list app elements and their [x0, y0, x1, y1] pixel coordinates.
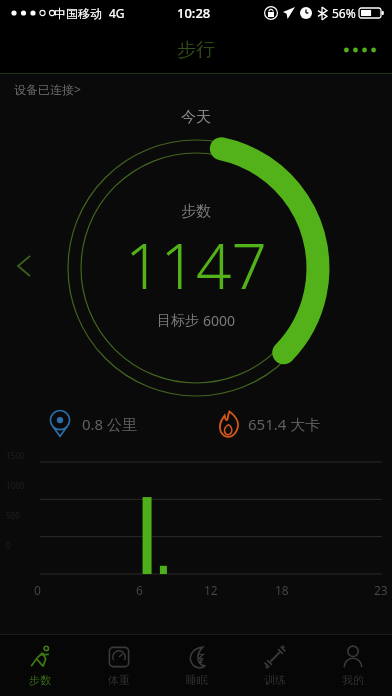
button[interactable]: 睡眠	[158, 634, 236, 696]
staticText: 0	[6, 540, 11, 551]
staticText: 0	[34, 582, 41, 598]
button[interactable]: 651.4 大卡	[196, 402, 392, 446]
staticText: 步数	[181, 202, 211, 221]
staticText: 4G	[109, 5, 125, 21]
button[interactable]: 步数	[0, 634, 79, 696]
staticText: 651.4 大卡	[248, 414, 321, 434]
staticText: 500	[6, 510, 20, 521]
staticText: 1500	[6, 450, 25, 461]
button[interactable]: Previous day	[0, 244, 44, 288]
staticText: 设备已连接>	[14, 81, 81, 97]
staticText: 我的	[342, 673, 364, 687]
staticText: 23	[374, 582, 388, 598]
staticText: 1000	[6, 480, 25, 491]
staticText: 中国移动	[54, 6, 102, 21]
staticText: 10:28	[177, 4, 211, 22]
staticText: 体重	[108, 673, 130, 687]
button[interactable]: 设备已连接>	[0, 77, 91, 101]
button[interactable]: 0.8 公里	[0, 402, 196, 446]
staticText: 睡眠	[186, 673, 208, 687]
staticText: 6	[136, 582, 143, 598]
staticText: 步行	[177, 38, 215, 62]
button[interactable]: 体重	[79, 634, 158, 696]
staticText: 6000	[203, 311, 236, 330]
staticText: 目标步	[157, 312, 199, 330]
button[interactable]: More options	[328, 33, 392, 67]
staticText: 训练	[264, 673, 286, 687]
staticText: 56%	[332, 5, 356, 21]
staticText: 步数	[29, 673, 51, 687]
staticText: 1147	[125, 223, 267, 307]
staticText: 0.8 公里	[82, 414, 138, 434]
staticText: 12	[204, 582, 218, 598]
button[interactable]: 我的	[314, 634, 392, 696]
staticText: 18	[275, 582, 289, 598]
button[interactable]: 训练	[236, 634, 314, 696]
staticText: 今天	[181, 108, 211, 127]
